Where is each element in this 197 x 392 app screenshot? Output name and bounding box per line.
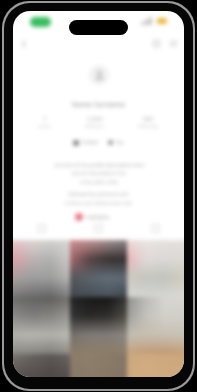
button[interactable]: Photo 5 (70, 297, 127, 354)
button[interactable]: Photo 3 (127, 240, 184, 297)
staticText: 567 (143, 115, 154, 123)
button[interactable]: Tab 3 (127, 223, 184, 234)
button[interactable]: Photo 1 (13, 240, 70, 297)
button[interactable]: Photo 8 (70, 354, 127, 377)
button[interactable]: Photo 7 (13, 354, 70, 377)
staticText: Name Surname (72, 100, 126, 110)
button[interactable]: Tab 1 (13, 223, 70, 234)
button[interactable]: Photo 2 (70, 240, 127, 297)
staticText: one line of the profile description here (54, 162, 144, 169)
button[interactable]: Tab 2 (70, 223, 127, 234)
staticText: Tag (115, 139, 124, 146)
button[interactable]: Photo 9 (127, 354, 184, 377)
button[interactable]: Menu (166, 36, 181, 51)
button[interactable]: New post (149, 36, 164, 51)
staticText: a line with a link (80, 179, 118, 186)
staticText: highlights (86, 214, 110, 221)
button[interactable]: Back (16, 36, 31, 51)
staticText: followed by someone and (68, 191, 129, 198)
button[interactable]: Photo 4 (13, 297, 70, 354)
staticText: Creator (81, 139, 99, 146)
button[interactable]: Photo 6 (127, 297, 184, 354)
staticText: 1,234 (87, 115, 103, 123)
